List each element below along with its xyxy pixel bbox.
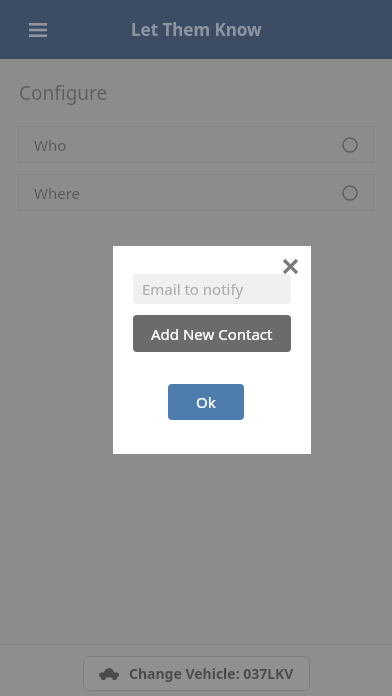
staticText: Change Vehicle: 037LKV [129,664,294,683]
button[interactable]: Email to notify [133,274,291,304]
staticText: Let Them Know [131,18,262,41]
staticText: Who [34,135,67,155]
button[interactable]: Open navigation menu [18,10,58,50]
button[interactable]: Change Vehicle: 037LKV [83,656,310,691]
staticText: Add New Contact [151,324,273,344]
button[interactable]: Who [18,126,374,163]
staticText: Ok [196,392,216,412]
button[interactable]: Ok [168,384,244,420]
button[interactable]: Add New Contact [133,315,291,352]
button[interactable]: Close [275,251,305,281]
staticText: Where [34,183,81,203]
staticText: Configure [19,80,108,106]
staticText: Email to notify [142,279,244,299]
button[interactable]: Where [18,174,374,211]
